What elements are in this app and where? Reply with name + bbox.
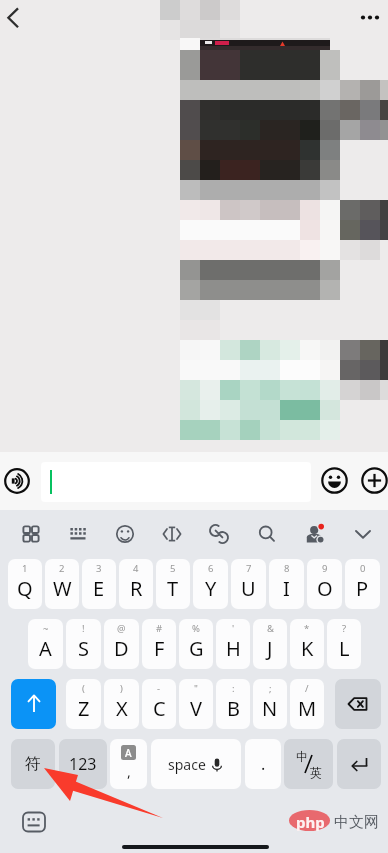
button[interactable]: 2 [45,559,79,609]
staticText: B [227,695,240,722]
staticText: 7 [246,562,252,575]
staticText: ? [342,622,347,635]
button[interactable]: Apps [7,510,54,557]
button[interactable]: A [110,739,147,789]
staticText: ! [82,622,85,635]
staticText: . [261,753,266,775]
button[interactable]: More options [352,2,388,34]
staticText: ( [82,682,85,695]
button[interactable]: 123 [59,739,107,789]
button[interactable]: Back [0,1,30,31]
staticText: 中文网 [334,813,379,832]
staticText: - [157,682,161,695]
button[interactable]: ~ [28,619,63,669]
button[interactable]: space [151,739,241,789]
button[interactable]: 9 [307,559,342,609]
button[interactable]: ( [66,679,101,729]
staticText: , [127,762,131,781]
staticText: 符 [25,754,41,774]
staticText: D [114,635,129,662]
staticText: O [317,575,333,602]
staticText: space [168,755,206,774]
staticText: G [189,635,204,662]
button[interactable]: Keyboard [54,510,101,557]
button[interactable]: : [216,679,250,729]
button[interactable]: Voice input [4,468,30,494]
button[interactable]: Attach [195,510,243,557]
staticText: 3 [96,562,102,575]
button[interactable]: Emoji [321,467,348,494]
button[interactable]: 符 [11,739,55,789]
staticText: / [305,682,309,695]
staticText: " [194,682,198,695]
staticText: X [116,695,128,722]
button[interactable]: ; [253,679,287,729]
button[interactable]: Text tools [148,510,195,557]
button[interactable]: 3 [82,559,116,609]
button[interactable]: Shift [11,679,56,729]
button[interactable]: Backspace [335,679,381,729]
button[interactable]: ' [216,619,250,669]
staticText: ~ [43,622,49,635]
button[interactable]: 7 [231,559,266,609]
staticText: V [190,695,202,722]
staticText: & [267,622,274,635]
button[interactable]: 0 [345,559,380,609]
button[interactable]: 5 [156,559,190,609]
staticText: M [298,695,317,722]
staticText: Z [78,695,90,722]
button[interactable]: 6 [193,559,228,609]
button[interactable]: 1 [8,559,42,609]
staticText: 1 [22,562,28,575]
button[interactable]: ? [327,619,361,669]
button[interactable]: Enter [337,739,381,789]
button[interactable]: " [179,679,213,729]
staticText: 8 [284,562,290,575]
button[interactable]: - [142,679,176,729]
staticText: % [192,622,200,635]
staticText: A [39,635,52,662]
button[interactable]: Contacts [291,510,339,557]
staticText: php [296,812,325,832]
button[interactable]: & [253,619,287,669]
button[interactable]: Emoji [101,510,148,557]
staticText: 9 [322,562,328,575]
staticText: 2 [59,562,65,575]
staticText: S [78,635,89,662]
button[interactable]: / [290,679,324,729]
button[interactable]: @ [104,619,139,669]
button[interactable]: % [179,619,213,669]
staticText: T [167,575,179,602]
button[interactable]: Add more [361,467,388,494]
staticText: F [154,635,165,662]
staticText: I [283,575,290,602]
button[interactable]: . [245,739,281,789]
staticText: : [232,682,235,695]
button[interactable]: ) [104,679,139,729]
staticText: A [125,746,132,760]
staticText: 5 [170,562,176,575]
staticText: N [262,695,278,722]
staticText: Q [17,575,33,602]
staticText: # [156,622,163,635]
button[interactable]: Search [243,510,291,557]
staticText: E [93,575,105,602]
button[interactable]: Switch keyboard [22,812,46,832]
staticText: Y [205,575,217,602]
button[interactable]: # [142,619,176,669]
button[interactable]: ! [66,619,101,669]
button[interactable]: Collapse [339,510,387,557]
button[interactable]: * [290,619,324,669]
staticText: L [339,635,350,662]
button[interactable]: 4 [119,559,153,609]
button[interactable]: 8 [269,559,304,609]
staticText: @ [117,622,126,635]
staticText: R [130,575,143,602]
staticText: U [241,575,256,602]
button[interactable] [41,462,311,502]
staticText: C [153,695,166,722]
staticText: 0 [360,562,366,575]
staticText: ; [269,682,272,695]
staticText: P [356,575,369,602]
button[interactable]: Chinese English toggle [284,739,333,789]
